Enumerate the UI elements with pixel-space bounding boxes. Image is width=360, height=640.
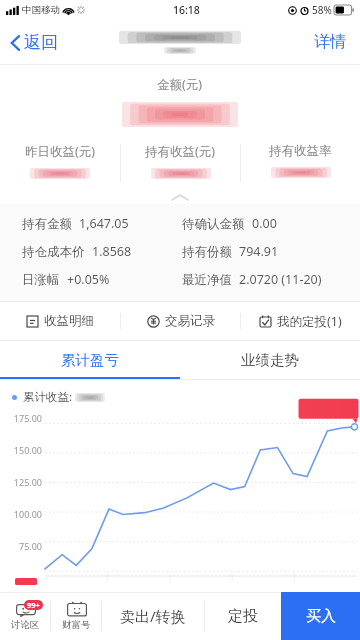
staticText: +0.05% [67,271,110,288]
staticText: 0.00 [252,215,277,232]
staticText: 持仓成本价 [22,244,85,260]
staticText: 收益明细 [44,313,94,329]
button[interactable]: 定投 [205,592,281,640]
staticText: 金额(元) [157,76,203,93]
staticText: 175.00 [4,412,42,424]
staticText: 讨论区 [11,619,40,631]
staticText: 持有金额 [22,216,72,232]
staticText: 卖出/转换 [120,606,186,626]
staticText: 1,647.05 [79,215,129,232]
staticText: 持有份额 [182,244,232,260]
staticText: 待确认金额 [182,216,245,232]
button[interactable]: 卖出/转换 [102,592,204,640]
staticText: 125.00 [4,476,42,488]
staticText: 150.00 [4,444,42,456]
staticText: 业绩走势 [241,351,299,369]
button[interactable]: 财富号 [51,592,101,640]
button[interactable]: 交易记录 [121,302,240,340]
staticText: 我的定投(1) [277,313,342,330]
staticText: 持有收益(元) [145,143,216,160]
staticText: 财富号 [62,619,91,631]
staticText: 16:18 [173,3,200,17]
staticText: 详情 [314,32,346,52]
button[interactable]: 累计盈亏 [0,341,180,379]
staticText: 794.91 [239,243,279,260]
staticText: 昨日收益(元) [25,143,96,160]
staticText: 99+ [27,600,40,610]
staticText: 交易记录 [165,313,215,329]
staticText: 中国移动 [22,4,60,16]
staticText: 75.00 [4,540,42,552]
staticText: 1.8568 [92,243,132,260]
button[interactable]: 99+ [0,592,50,640]
button[interactable]: 业绩走势 [180,341,360,379]
staticText: 持有收益率 [269,143,332,159]
staticText: 累计收益: [23,389,73,405]
staticText: 返回 [24,32,58,53]
staticText: 累计盈亏 [61,351,119,369]
staticText: 58% [312,3,332,17]
staticText: 最近净值 [182,272,232,288]
staticText: 定投 [228,607,258,626]
button[interactable]: 收益明细 [0,302,120,340]
staticText: 买入 [306,607,336,626]
button[interactable]: 我的定投(1) [241,302,360,340]
staticText: 100.00 [4,508,42,520]
button[interactable]: 买入 [281,592,360,640]
staticText: 2.0720 (11-20) [239,271,322,288]
button[interactable]: 详情 [300,24,360,60]
button[interactable]: 返回 [0,26,68,59]
staticText: 日涨幅 [22,272,60,288]
